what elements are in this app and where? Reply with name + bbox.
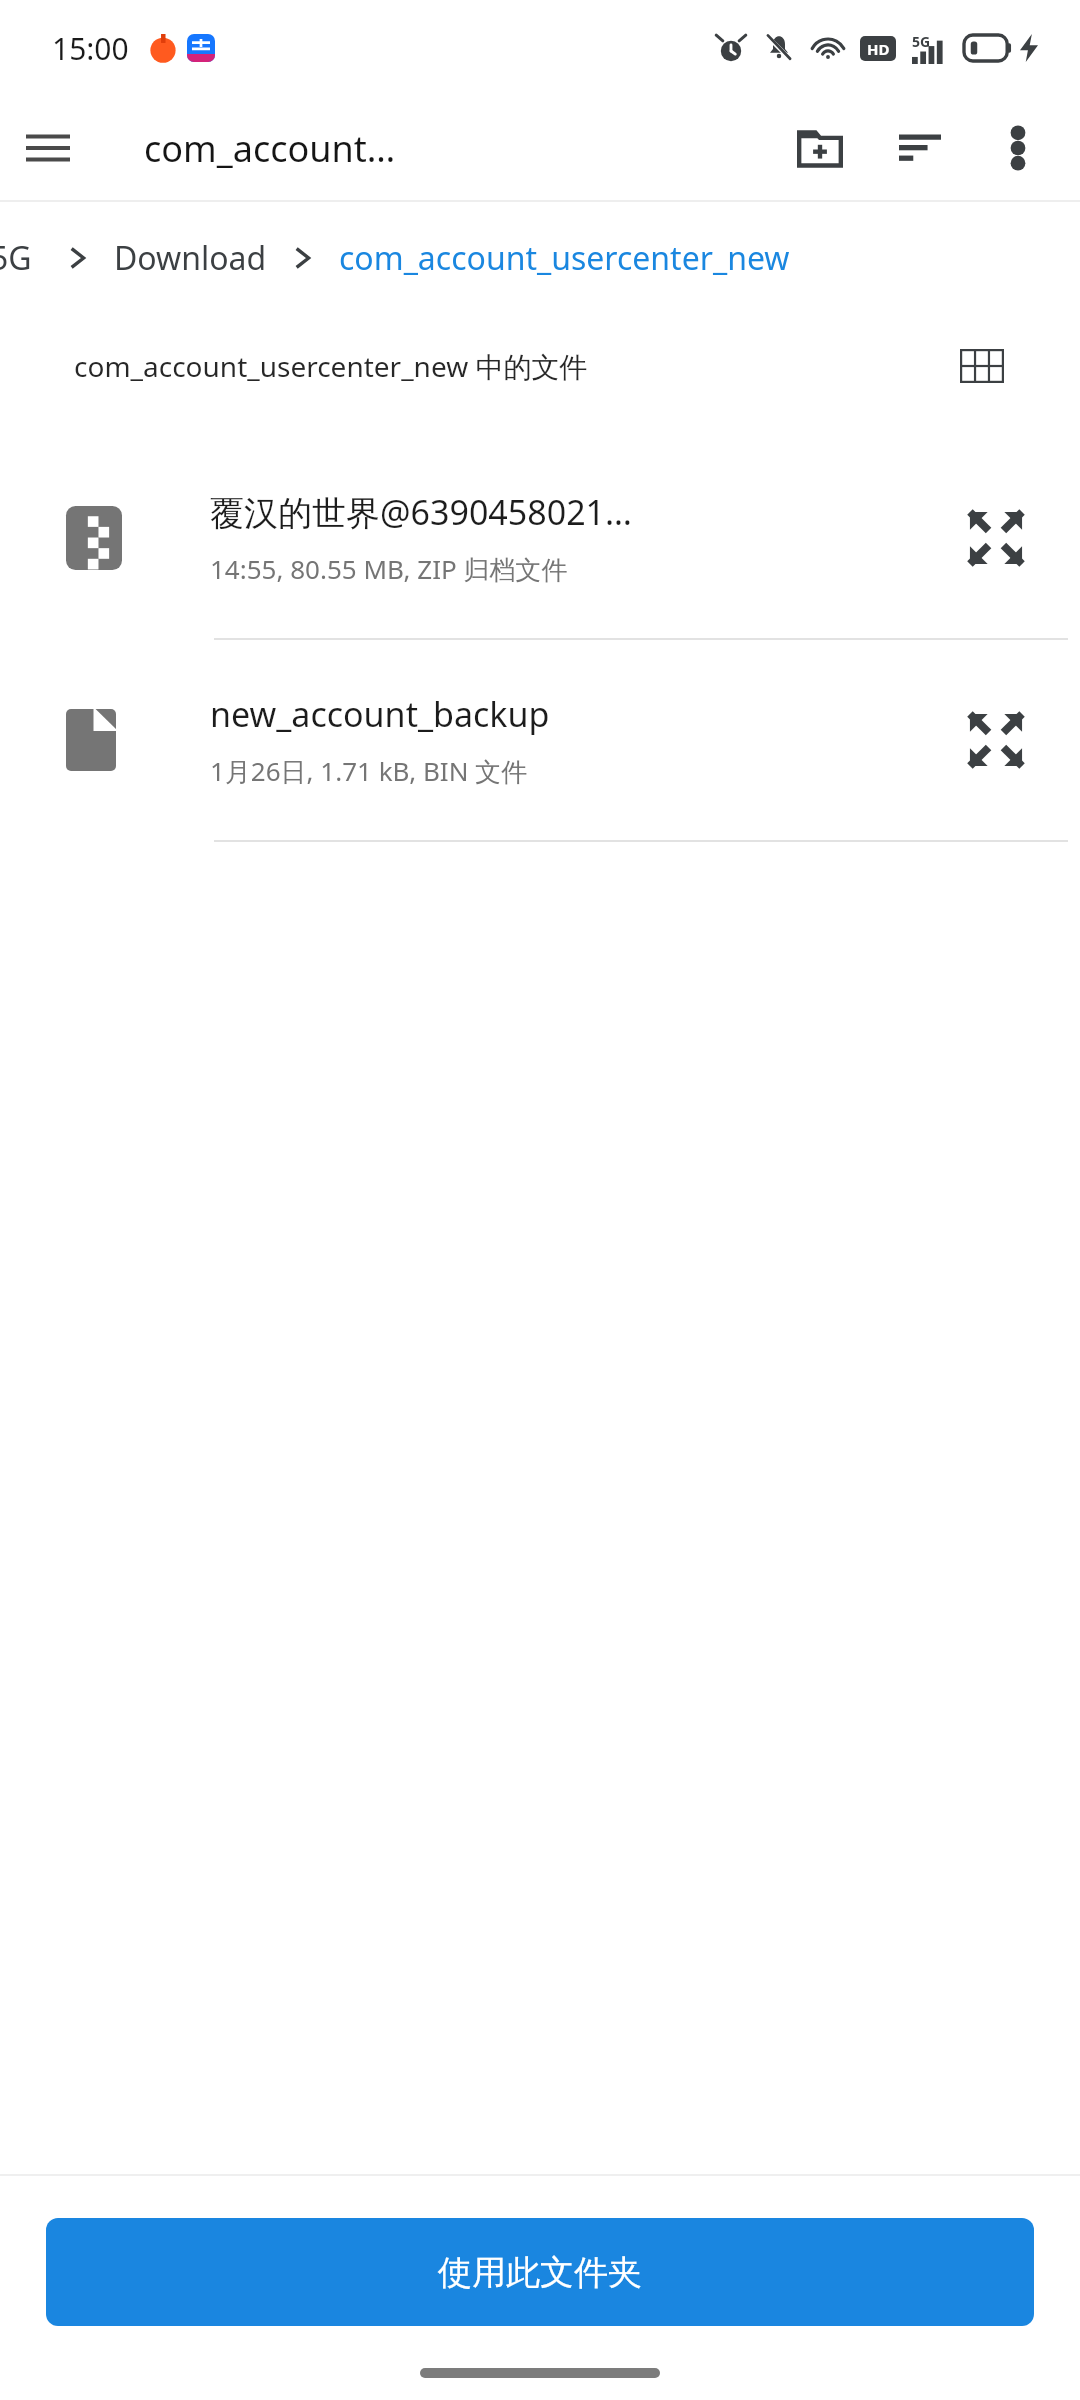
staticText: 5G <box>0 236 32 280</box>
staticText: Download <box>114 236 267 280</box>
button[interactable]: new_account_backup <box>0 640 1080 840</box>
button[interactable]: 使用此文件夹 <box>46 2218 1034 2326</box>
button[interactable]: Download <box>114 236 267 280</box>
staticText: 15:00 <box>52 28 129 69</box>
staticText: HD <box>867 39 890 59</box>
button[interactable]: New folder <box>772 100 868 196</box>
button[interactable]: com_account_usercenter_new <box>339 236 790 280</box>
button[interactable]: More options <box>970 100 1066 196</box>
staticText: 5G <box>912 32 931 51</box>
button[interactable]: Show roots <box>0 100 96 196</box>
button[interactable]: Sort <box>872 100 968 196</box>
button[interactable]: 5G <box>0 236 32 280</box>
staticText: 14:55, 80.55 MB, ZIP 归档文件 <box>210 551 568 587</box>
staticText: new_account_backup <box>210 691 550 737</box>
staticText: 使用此文件夹 <box>438 2251 642 2294</box>
staticText: 覆汉的世界@6390458021… <box>210 489 632 535</box>
button[interactable]: Grid view <box>952 336 1012 396</box>
staticText: com_account_usercenter_new <box>339 236 790 280</box>
staticText: com_account_usercenter_new 中的文件 <box>74 347 588 385</box>
staticText: 1月26日, 1.71 kB, BIN 文件 <box>210 753 528 789</box>
button[interactable]: 覆汉的世界@6390458021… <box>0 438 1080 638</box>
staticText: com_account… <box>144 124 396 173</box>
button[interactable]: Preview file <box>946 488 1046 588</box>
button[interactable]: Preview file <box>946 690 1046 790</box>
